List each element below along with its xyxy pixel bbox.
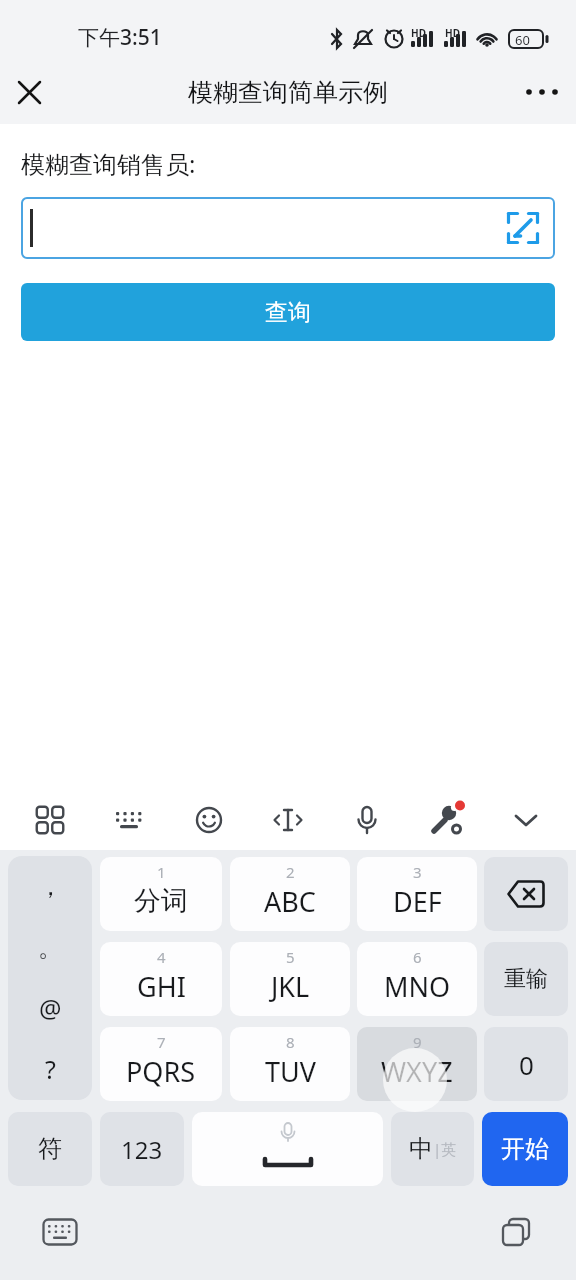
staticText: 7 [157, 1032, 166, 1052]
button[interactable] [8, 71, 50, 113]
staticText: PQRS [126, 1053, 196, 1090]
staticText: 模糊查询简单示例 [188, 77, 388, 108]
staticText: DEF [393, 883, 442, 920]
staticText: 查询 [265, 298, 311, 327]
staticText: 开始 [501, 1134, 549, 1164]
button[interactable]: ， [8, 856, 92, 1100]
staticText: 8 [286, 1032, 295, 1052]
staticText: 重输 [504, 965, 548, 993]
button[interactable] [192, 1112, 383, 1186]
button[interactable] [492, 1212, 540, 1252]
staticText: 9 [413, 1032, 422, 1052]
staticText: HD [411, 26, 426, 40]
staticText: 0 [519, 1047, 534, 1082]
staticText: WXYZ [381, 1053, 453, 1090]
staticText: 123 [121, 1133, 163, 1166]
staticText: @ [39, 991, 62, 1025]
button[interactable]: 4 [100, 942, 222, 1016]
button[interactable] [111, 802, 147, 838]
button[interactable] [429, 802, 465, 838]
button[interactable]: 8 [230, 1027, 350, 1101]
button[interactable] [520, 71, 564, 113]
staticText: GHI [137, 968, 186, 1005]
staticText: HD [445, 26, 460, 40]
button[interactable] [36, 1212, 84, 1252]
staticText: 4 [157, 947, 166, 967]
staticText: ? [45, 1052, 56, 1086]
button[interactable] [349, 802, 385, 838]
staticText: 60 [515, 31, 530, 49]
staticText: MNO [384, 968, 451, 1005]
button[interactable] [32, 802, 68, 838]
button[interactable]: 符 [8, 1112, 92, 1186]
staticText: 模糊查询销售员: [21, 147, 196, 180]
staticText: ， [38, 871, 63, 902]
staticText: 下午3:51 [78, 23, 162, 52]
staticText: JKL [271, 968, 310, 1005]
button[interactable]: 6 [357, 942, 477, 1016]
staticText: 分词 [134, 884, 188, 918]
button[interactable]: 开始 [482, 1112, 568, 1186]
staticText: 。 [38, 932, 63, 963]
staticText: 1 [157, 862, 166, 882]
button[interactable] [508, 802, 544, 838]
button[interactable]: 3 [357, 857, 477, 931]
button[interactable]: 1 [100, 857, 222, 931]
button[interactable] [21, 197, 555, 259]
button[interactable]: 5 [230, 942, 350, 1016]
staticText: 中 [409, 1134, 433, 1164]
button[interactable]: 9 [357, 1027, 477, 1101]
button[interactable]: 123 [100, 1112, 184, 1186]
button[interactable]: 7 [100, 1027, 222, 1101]
button[interactable]: 重输 [484, 942, 568, 1016]
button[interactable]: 中 [391, 1112, 474, 1186]
staticText: 2 [286, 862, 295, 882]
staticText: TUV [265, 1053, 316, 1090]
button[interactable] [484, 857, 568, 931]
staticText: 5 [286, 947, 295, 967]
staticText: 6 [413, 947, 422, 967]
staticText: ABC [264, 883, 316, 920]
button[interactable] [191, 802, 227, 838]
button[interactable]: 查询 [21, 283, 555, 341]
staticText: |英 [433, 1139, 457, 1159]
button[interactable]: 0 [484, 1027, 568, 1101]
button[interactable] [270, 802, 306, 838]
button[interactable]: 2 [230, 857, 350, 931]
staticText: 3 [413, 862, 422, 882]
staticText: 符 [38, 1134, 62, 1164]
